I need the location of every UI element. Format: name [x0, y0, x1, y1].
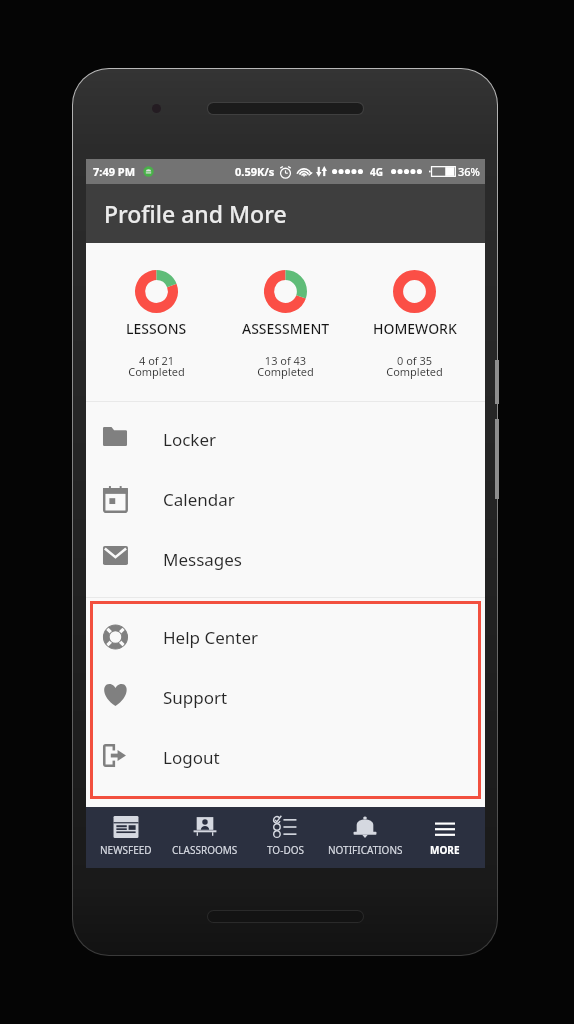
button[interactable]: MORE: [405, 807, 485, 868]
button[interactable]: CLASSROOMS: [165, 807, 245, 868]
staticText: Calendar: [163, 488, 235, 511]
staticText: Locker: [163, 428, 217, 451]
staticText: LESSONS: [126, 319, 187, 338]
staticText: Profile and More: [104, 198, 287, 229]
staticText: ASSESSMENT: [242, 319, 330, 338]
staticText: 4 of 21 Completed: [128, 353, 185, 379]
staticText: MORE: [430, 843, 460, 857]
staticText: Support: [163, 686, 228, 709]
staticText: Messages: [163, 548, 243, 571]
staticText: NEWSFEED: [100, 843, 152, 857]
button[interactable]: LESSONS: [92, 243, 221, 401]
staticText: 7:49 PM: [93, 164, 136, 179]
staticText: Logout: [163, 746, 220, 769]
staticText: 0.59K/s: [235, 164, 275, 179]
staticText: 36%: [458, 164, 480, 179]
button[interactable]: Calendar: [86, 469, 485, 529]
button[interactable]: ASSESSMENT: [221, 243, 350, 401]
staticText: HOMEWORK: [373, 319, 457, 338]
button[interactable]: Locker: [86, 409, 485, 469]
staticText: Help Center: [163, 626, 259, 649]
button[interactable]: TO-DOS: [245, 807, 325, 868]
button[interactable]: HOMEWORK: [350, 243, 479, 401]
staticText: NOTIFICATIONS: [328, 843, 403, 857]
staticText: 0 of 35 Completed: [386, 353, 443, 379]
button[interactable]: Help Center: [86, 607, 485, 667]
button[interactable]: Logout: [86, 727, 485, 787]
staticText: CLASSROOMS: [172, 843, 238, 857]
button[interactable]: Support: [86, 667, 485, 727]
staticText: TO-DOS: [267, 843, 304, 857]
button[interactable]: NOTIFICATIONS: [325, 807, 405, 868]
staticText: 4G: [370, 165, 383, 179]
button[interactable]: Messages: [86, 529, 485, 589]
button[interactable]: NEWSFEED: [86, 807, 165, 868]
staticText: 13 of 43 Completed: [257, 353, 314, 379]
